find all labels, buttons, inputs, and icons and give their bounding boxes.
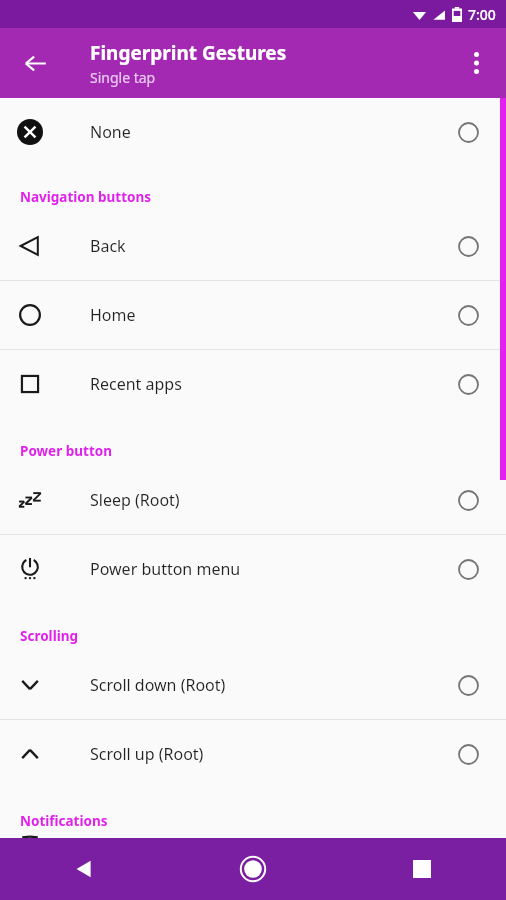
staticText: Scroll down (Root) (90, 674, 430, 696)
staticText: Sleep (Root) (90, 489, 430, 511)
button[interactable]: Back (10, 38, 60, 88)
staticText: Scrolling (20, 627, 78, 645)
staticText: Notifications (20, 812, 108, 830)
button[interactable]: More options (452, 39, 500, 87)
button[interactable]: Back (0, 838, 168, 900)
staticText: None (90, 121, 430, 143)
button[interactable]: Sleep (Root) (0, 466, 506, 534)
button[interactable]: Home (168, 838, 337, 900)
button[interactable]: None (0, 98, 506, 166)
staticText: Single tap (90, 68, 156, 87)
button[interactable]: Back (0, 212, 506, 280)
staticText: Back (90, 235, 430, 257)
button[interactable]: Power button menu (0, 535, 506, 603)
staticText: Scroll up (Root) (90, 743, 430, 765)
button[interactable]: Expand (0, 836, 506, 838)
button[interactable]: Recent apps (337, 838, 506, 900)
staticText: Fingerprint Gestures (90, 40, 287, 66)
staticText: Power button (20, 442, 112, 460)
staticText: Navigation buttons (20, 188, 152, 206)
button[interactable]: Home (0, 281, 506, 349)
staticText: Home (90, 304, 430, 326)
staticText: Power button menu (90, 558, 430, 580)
button[interactable]: Scroll up (Root) (0, 720, 506, 788)
staticText: 7:00 (468, 5, 496, 24)
staticText: Recent apps (90, 373, 430, 395)
button[interactable]: Scroll down (Root) (0, 651, 506, 719)
button[interactable]: Recent apps (0, 350, 506, 418)
